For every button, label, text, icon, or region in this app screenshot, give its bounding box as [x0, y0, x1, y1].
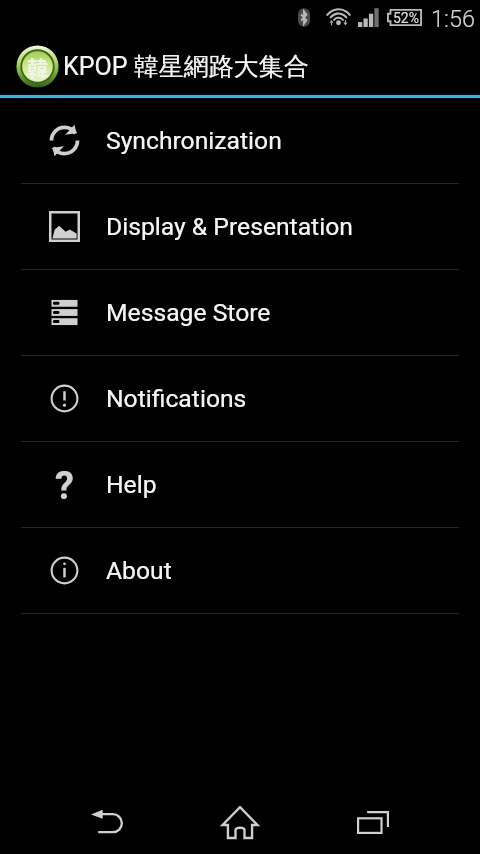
button[interactable]: Back [67, 790, 147, 854]
staticText: 1:56 [431, 5, 476, 33]
button[interactable]: Home [200, 790, 280, 854]
staticText: Display & Presentation [106, 212, 353, 241]
staticText: Notifications [106, 384, 247, 413]
staticText: 52% [393, 10, 419, 26]
staticText: Message Store [106, 298, 271, 327]
staticText: Synchronization [106, 126, 282, 155]
button[interactable]: Display & Presentation [0, 184, 480, 269]
staticText: 韓 [27, 52, 48, 82]
staticText: ? [55, 464, 74, 509]
staticText: KPOP 韓星網路大集合 [63, 51, 309, 82]
button[interactable]: About [0, 528, 480, 613]
button[interactable]: Message Store [0, 270, 480, 355]
button[interactable]: ? [0, 442, 480, 527]
button[interactable]: Synchronization [0, 98, 480, 183]
button[interactable]: Recent apps [333, 790, 413, 854]
staticText: Help [106, 470, 157, 499]
button[interactable]: Notifications [0, 356, 480, 441]
staticText: About [106, 556, 172, 585]
